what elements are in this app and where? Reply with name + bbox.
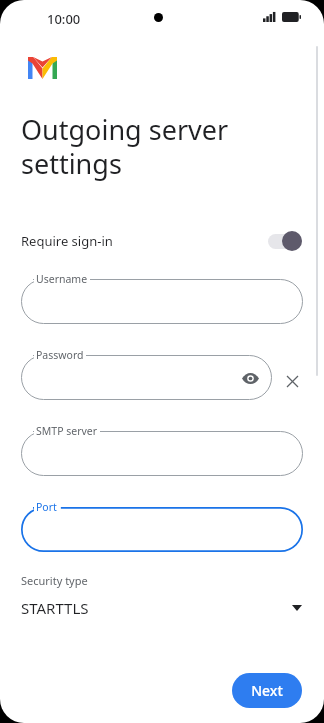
staticText: Port bbox=[36, 500, 57, 514]
button[interactable]: Security type bbox=[0, 573, 324, 631]
staticText: Password bbox=[36, 348, 84, 362]
staticText: STARTTLS bbox=[21, 598, 89, 618]
staticText: Username bbox=[36, 272, 88, 286]
button[interactable]: Password bbox=[21, 355, 272, 400]
staticText: Next bbox=[251, 681, 283, 700]
staticText: SMTP server bbox=[36, 424, 98, 438]
staticText: Outgoing server settings bbox=[21, 111, 229, 182]
button[interactable]: Username bbox=[21, 279, 303, 324]
button[interactable]: Require sign-in bbox=[0, 224, 324, 258]
button[interactable]: Next bbox=[232, 673, 302, 708]
staticText: Require sign-in bbox=[21, 232, 113, 250]
staticText: 10:00 bbox=[47, 10, 81, 28]
button[interactable]: Require sign-in toggle bbox=[268, 231, 302, 251]
button[interactable]: Port bbox=[21, 507, 303, 552]
button[interactable]: Clear password bbox=[281, 370, 303, 392]
button[interactable]: Show password bbox=[237, 365, 263, 391]
staticText: Security type bbox=[21, 573, 88, 588]
button[interactable]: SMTP server bbox=[21, 431, 303, 476]
